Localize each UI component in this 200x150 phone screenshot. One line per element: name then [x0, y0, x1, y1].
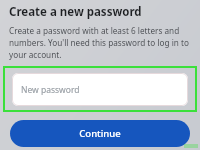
staticText: Continue: [79, 127, 121, 140]
button[interactable]: Continue: [10, 120, 190, 147]
staticText: New password: [21, 84, 80, 96]
staticText: Create a new password: [9, 4, 142, 20]
button[interactable]: New password: [12, 73, 188, 106]
staticText: Create a password with at least 6 letter…: [9, 25, 192, 60]
